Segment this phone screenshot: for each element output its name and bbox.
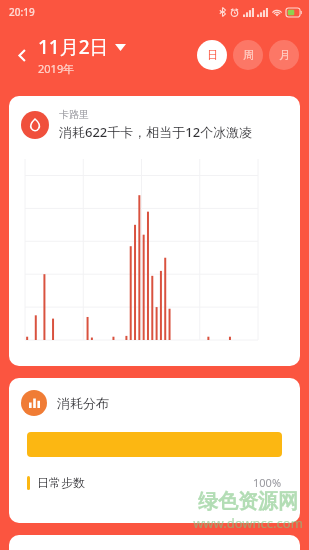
staticText: 日常步数: [37, 475, 85, 490]
staticText: 100%: [253, 475, 282, 490]
button[interactable]: Back: [10, 43, 34, 67]
staticText: 周: [243, 48, 254, 62]
staticText: www.downcc.com: [193, 514, 303, 532]
staticText: 消耗分布: [57, 395, 109, 411]
button[interactable]: 日: [197, 40, 227, 70]
button[interactable]: 月: [269, 40, 299, 70]
button[interactable]: 400千卡: [9, 535, 300, 550]
button[interactable]: 消耗分布: [9, 378, 300, 523]
staticText: 日: [207, 48, 218, 62]
staticText: 消耗622千卡，相当于12个冰激凌: [59, 123, 253, 141]
button[interactable]: 卡路里: [9, 96, 300, 366]
staticText: 11月2日: [38, 34, 109, 60]
button[interactable]: 周: [233, 40, 263, 70]
staticText: 20:19: [9, 5, 35, 19]
button[interactable]: 11月2日: [38, 34, 126, 76]
staticText: 月: [279, 48, 290, 62]
staticText: 2019年: [38, 61, 75, 76]
staticText: 绿色资源网: [198, 489, 298, 514]
staticText: 卡路里: [59, 108, 89, 121]
button[interactable]: 日常步数: [27, 475, 282, 490]
